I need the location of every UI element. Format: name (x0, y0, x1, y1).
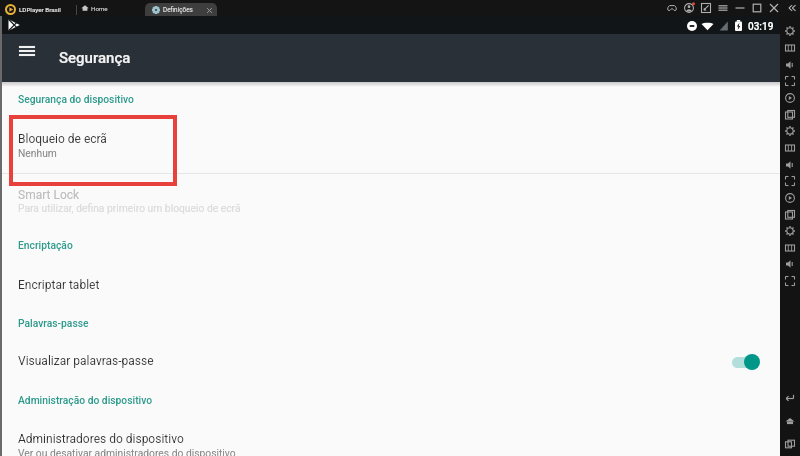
staticText: 03:19 (748, 21, 774, 33)
button[interactable]: Definições (145, 3, 217, 17)
button[interactable]: Menu (714, 0, 731, 16)
button[interactable]: Game controls (663, 0, 680, 16)
staticText: Encriptar tablet (18, 278, 100, 292)
staticText: Para utilizar, defina primeiro um bloque… (18, 202, 241, 214)
staticText: Ver ou desativar administradores do disp… (18, 447, 236, 456)
button[interactable]: Location (781, 256, 799, 272)
button[interactable]: Volume up (781, 57, 799, 73)
button[interactable]: Rotate (781, 107, 799, 123)
button[interactable]: Volume down (781, 73, 799, 89)
staticText: Smart Lock (18, 188, 80, 202)
button[interactable]: Minimize (731, 0, 748, 16)
staticText: Definições (163, 6, 193, 14)
staticText: Visualizar palavras-passe (18, 354, 154, 368)
button[interactable]: Keyboard mapping (781, 40, 799, 56)
button[interactable]: APK install (781, 140, 799, 156)
staticText: Administradores do dispositivo (18, 432, 184, 446)
button[interactable]: Synchronizer (781, 207, 799, 223)
button[interactable]: Maximize (748, 0, 765, 16)
staticText: Administração do dispositivo (18, 394, 153, 406)
button[interactable]: Close tab (206, 7, 213, 14)
button[interactable]: Open navigation drawer (6, 34, 48, 79)
button[interactable]: Resize window (697, 0, 714, 16)
button[interactable]: Recent apps (781, 436, 799, 452)
button[interactable]: Home (781, 413, 799, 429)
staticText: Nenhum (18, 147, 57, 159)
button[interactable]: Fullscreen (781, 90, 799, 106)
button[interactable]: Visualizar palavras-passe toggle (715, 340, 773, 384)
button[interactable]: Settings (781, 23, 799, 39)
button[interactable]: Shake (781, 223, 799, 239)
staticText: Segurança (59, 49, 131, 67)
button[interactable]: Multi instance (781, 123, 799, 139)
button[interactable]: Back (781, 390, 799, 406)
button[interactable]: Screenshot (781, 157, 799, 173)
staticText: Bloqueio de ecrã (18, 132, 107, 146)
button[interactable]: Virtual (781, 273, 799, 289)
button[interactable]: Video record (781, 190, 799, 206)
button[interactable]: Account (680, 0, 697, 16)
staticText: Encriptação (18, 239, 73, 251)
staticText: LDPlayer Brasil (19, 6, 61, 13)
button[interactable]: Close (765, 0, 782, 16)
button[interactable]: File manager (781, 240, 799, 256)
button[interactable]: Home (79, 0, 113, 16)
button[interactable]: Cut (781, 173, 799, 189)
staticText: Segurança do dispositivo (18, 93, 134, 105)
staticText: Home (91, 5, 108, 12)
button[interactable]: Collapse sidebar (782, 0, 799, 16)
staticText: Palavras-passe (18, 317, 89, 329)
